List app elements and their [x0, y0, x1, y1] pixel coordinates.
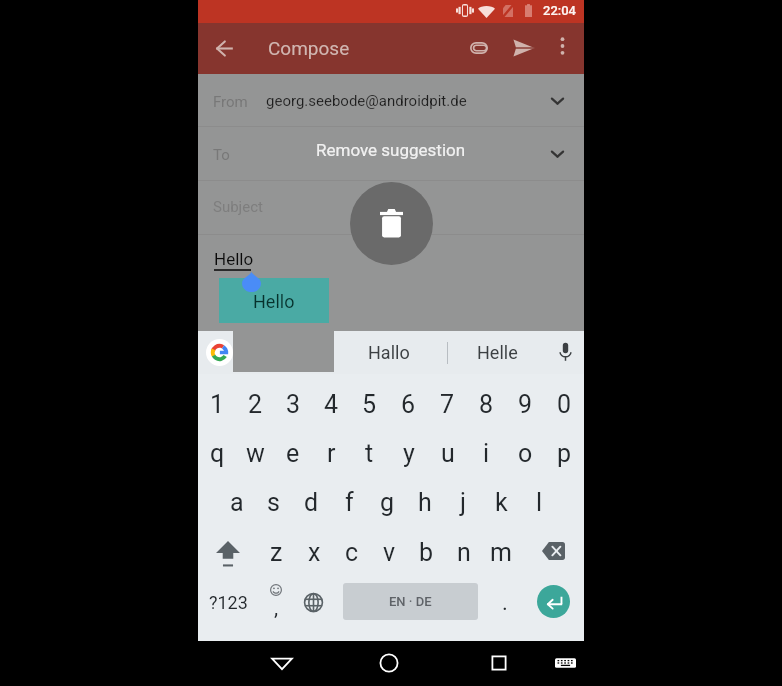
- button[interactable]: 4: [312, 380, 350, 429]
- button[interactable]: i: [467, 429, 506, 478]
- staticText: Subject: [213, 198, 263, 216]
- button[interactable]: 6: [389, 380, 428, 429]
- staticText: .: [502, 590, 508, 616]
- button[interactable]: q: [198, 429, 236, 478]
- staticText: y: [403, 439, 415, 468]
- button[interactable]: Enter: [537, 585, 570, 618]
- button[interactable]: a: [218, 478, 255, 526]
- button[interactable]: l: [520, 478, 558, 526]
- staticText: ?123: [209, 592, 248, 613]
- staticText: n: [457, 538, 471, 567]
- staticText: e: [286, 439, 300, 468]
- staticText: h: [418, 488, 432, 517]
- button[interactable]: .: [485, 575, 525, 630]
- staticText: r: [327, 439, 336, 468]
- staticText: v: [383, 538, 396, 567]
- staticText: o: [518, 439, 533, 468]
- button[interactable]: p: [545, 429, 584, 478]
- staticText: 0: [557, 390, 572, 419]
- button[interactable]: k: [482, 478, 520, 526]
- staticText: j: [460, 488, 466, 517]
- staticText: 9: [518, 390, 533, 419]
- button[interactable]: e: [274, 429, 312, 478]
- staticText: 5: [362, 390, 377, 419]
- button[interactable]: Google: [206, 339, 233, 366]
- button[interactable]: 0: [545, 380, 584, 429]
- staticText: x: [308, 538, 321, 567]
- staticText: 7: [440, 390, 455, 419]
- button[interactable]: x: [295, 528, 333, 576]
- button[interactable]: Delete: [350, 182, 433, 265]
- button[interactable]: Voice input: [554, 341, 576, 363]
- staticText: ,: [274, 596, 279, 621]
- button[interactable]: Switch keyboard: [555, 655, 576, 671]
- staticText: d: [304, 488, 319, 517]
- button[interactable]: y: [389, 429, 428, 478]
- staticText: l: [536, 488, 543, 517]
- button[interactable]: Home: [378, 652, 400, 674]
- button[interactable]: ?123: [204, 575, 253, 630]
- button[interactable]: Change language: [294, 575, 332, 630]
- button[interactable]: Helle: [477, 342, 518, 363]
- button[interactable]: Hallo: [368, 342, 410, 363]
- button[interactable]: Back: [271, 652, 293, 674]
- staticText: EN · DE: [389, 594, 432, 609]
- button[interactable]: Back: [201, 25, 247, 71]
- button[interactable]: b: [408, 528, 445, 576]
- staticText: Compose: [268, 37, 350, 59]
- staticText: b: [419, 538, 434, 567]
- button[interactable]: s: [255, 478, 292, 526]
- button[interactable]: c: [333, 528, 371, 576]
- button[interactable]: Recent apps: [488, 652, 510, 674]
- button[interactable]: Backspace: [519, 528, 584, 576]
- button[interactable]: h: [406, 478, 444, 526]
- button[interactable]: 8: [467, 380, 506, 429]
- staticText: 1: [210, 390, 225, 419]
- staticText: m: [490, 538, 512, 567]
- button[interactable]: 1: [198, 380, 236, 429]
- staticText: Remove suggestion: [316, 140, 466, 160]
- button[interactable]: j: [444, 478, 482, 526]
- button[interactable]: 9: [506, 380, 545, 429]
- staticText: 3: [286, 390, 301, 419]
- staticText: 8: [479, 390, 494, 419]
- staticText: u: [441, 439, 455, 468]
- staticText: 4: [324, 390, 339, 419]
- button[interactable]: v: [371, 528, 408, 576]
- button[interactable]: 5: [350, 380, 389, 429]
- button[interactable]: m: [482, 528, 519, 576]
- staticText: 6: [401, 390, 416, 419]
- button[interactable]: t: [350, 429, 389, 478]
- button[interactable]: z: [257, 528, 295, 576]
- staticText: t: [365, 439, 374, 468]
- button[interactable]: Emoji and comma: [256, 575, 296, 630]
- button[interactable]: Space: [343, 583, 478, 620]
- button[interactable]: Shift: [198, 528, 257, 576]
- button[interactable]: Attach file: [457, 26, 501, 70]
- staticText: From: [213, 93, 248, 111]
- staticText: w: [246, 439, 265, 468]
- staticText: 2: [248, 390, 263, 419]
- button[interactable]: o: [506, 429, 545, 478]
- button[interactable]: f: [330, 478, 368, 526]
- staticText: k: [495, 488, 508, 517]
- button[interactable]: 2: [236, 380, 274, 429]
- staticText: p: [557, 439, 572, 468]
- staticText: f: [345, 488, 354, 517]
- staticText: To: [213, 146, 230, 164]
- button[interactable]: g: [368, 478, 406, 526]
- button[interactable]: w: [236, 429, 274, 478]
- staticText: 22:04: [543, 3, 576, 18]
- staticText: Hello: [253, 291, 295, 312]
- staticText: i: [483, 439, 490, 468]
- button[interactable]: 7: [428, 380, 467, 429]
- button[interactable]: Send: [502, 26, 546, 70]
- staticText: Hello: [214, 249, 254, 269]
- button[interactable]: u: [428, 429, 467, 478]
- button[interactable]: n: [445, 528, 482, 576]
- button[interactable]: More options: [542, 26, 582, 66]
- button[interactable]: r: [312, 429, 350, 478]
- button[interactable]: 3: [274, 380, 312, 429]
- staticText: q: [210, 439, 225, 468]
- button[interactable]: d: [292, 478, 330, 526]
